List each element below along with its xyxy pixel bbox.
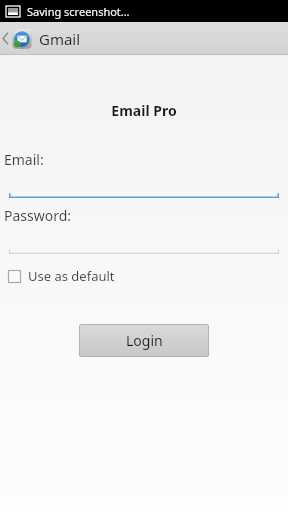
button[interactable]: Use as default (4, 264, 119, 288)
staticText: Gmail (39, 29, 81, 49)
staticText: Login (126, 331, 163, 350)
staticText: Use as default (28, 267, 115, 285)
staticText: Password: (4, 206, 72, 225)
staticText: Saving screenshot… (27, 4, 130, 19)
staticText: Email: (4, 150, 44, 169)
button[interactable]: Login (79, 324, 209, 357)
button[interactable]: Navigate up, Gmail (0, 22, 89, 55)
staticText: Email Pro (0, 101, 288, 120)
